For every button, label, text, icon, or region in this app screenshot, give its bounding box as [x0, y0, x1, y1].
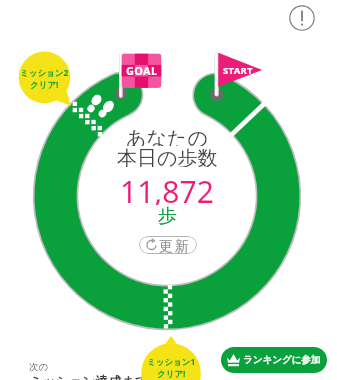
button[interactable]: ランキングに参加: [221, 347, 327, 373]
staticText: 歩: [158, 204, 177, 226]
staticText: クリア!: [157, 368, 186, 380]
button[interactable]: 更新: [139, 236, 197, 254]
staticText: クリア!: [30, 79, 59, 91]
staticText: ランキングに参加: [243, 354, 321, 366]
staticText: START: [223, 64, 253, 77]
staticText: GOAL: [126, 63, 158, 78]
button[interactable]: Information: [288, 4, 316, 32]
staticText: 11,872: [120, 171, 214, 205]
staticText: 次の: [29, 361, 49, 373]
staticText: ミッション達成まで: [29, 373, 149, 380]
staticText: 更新: [159, 238, 191, 254]
staticText: 本日の歩数: [117, 146, 218, 167]
staticText: あなたの: [126, 126, 208, 146]
staticText: ミッション2: [20, 67, 69, 79]
staticText: ミッション1: [147, 356, 196, 368]
